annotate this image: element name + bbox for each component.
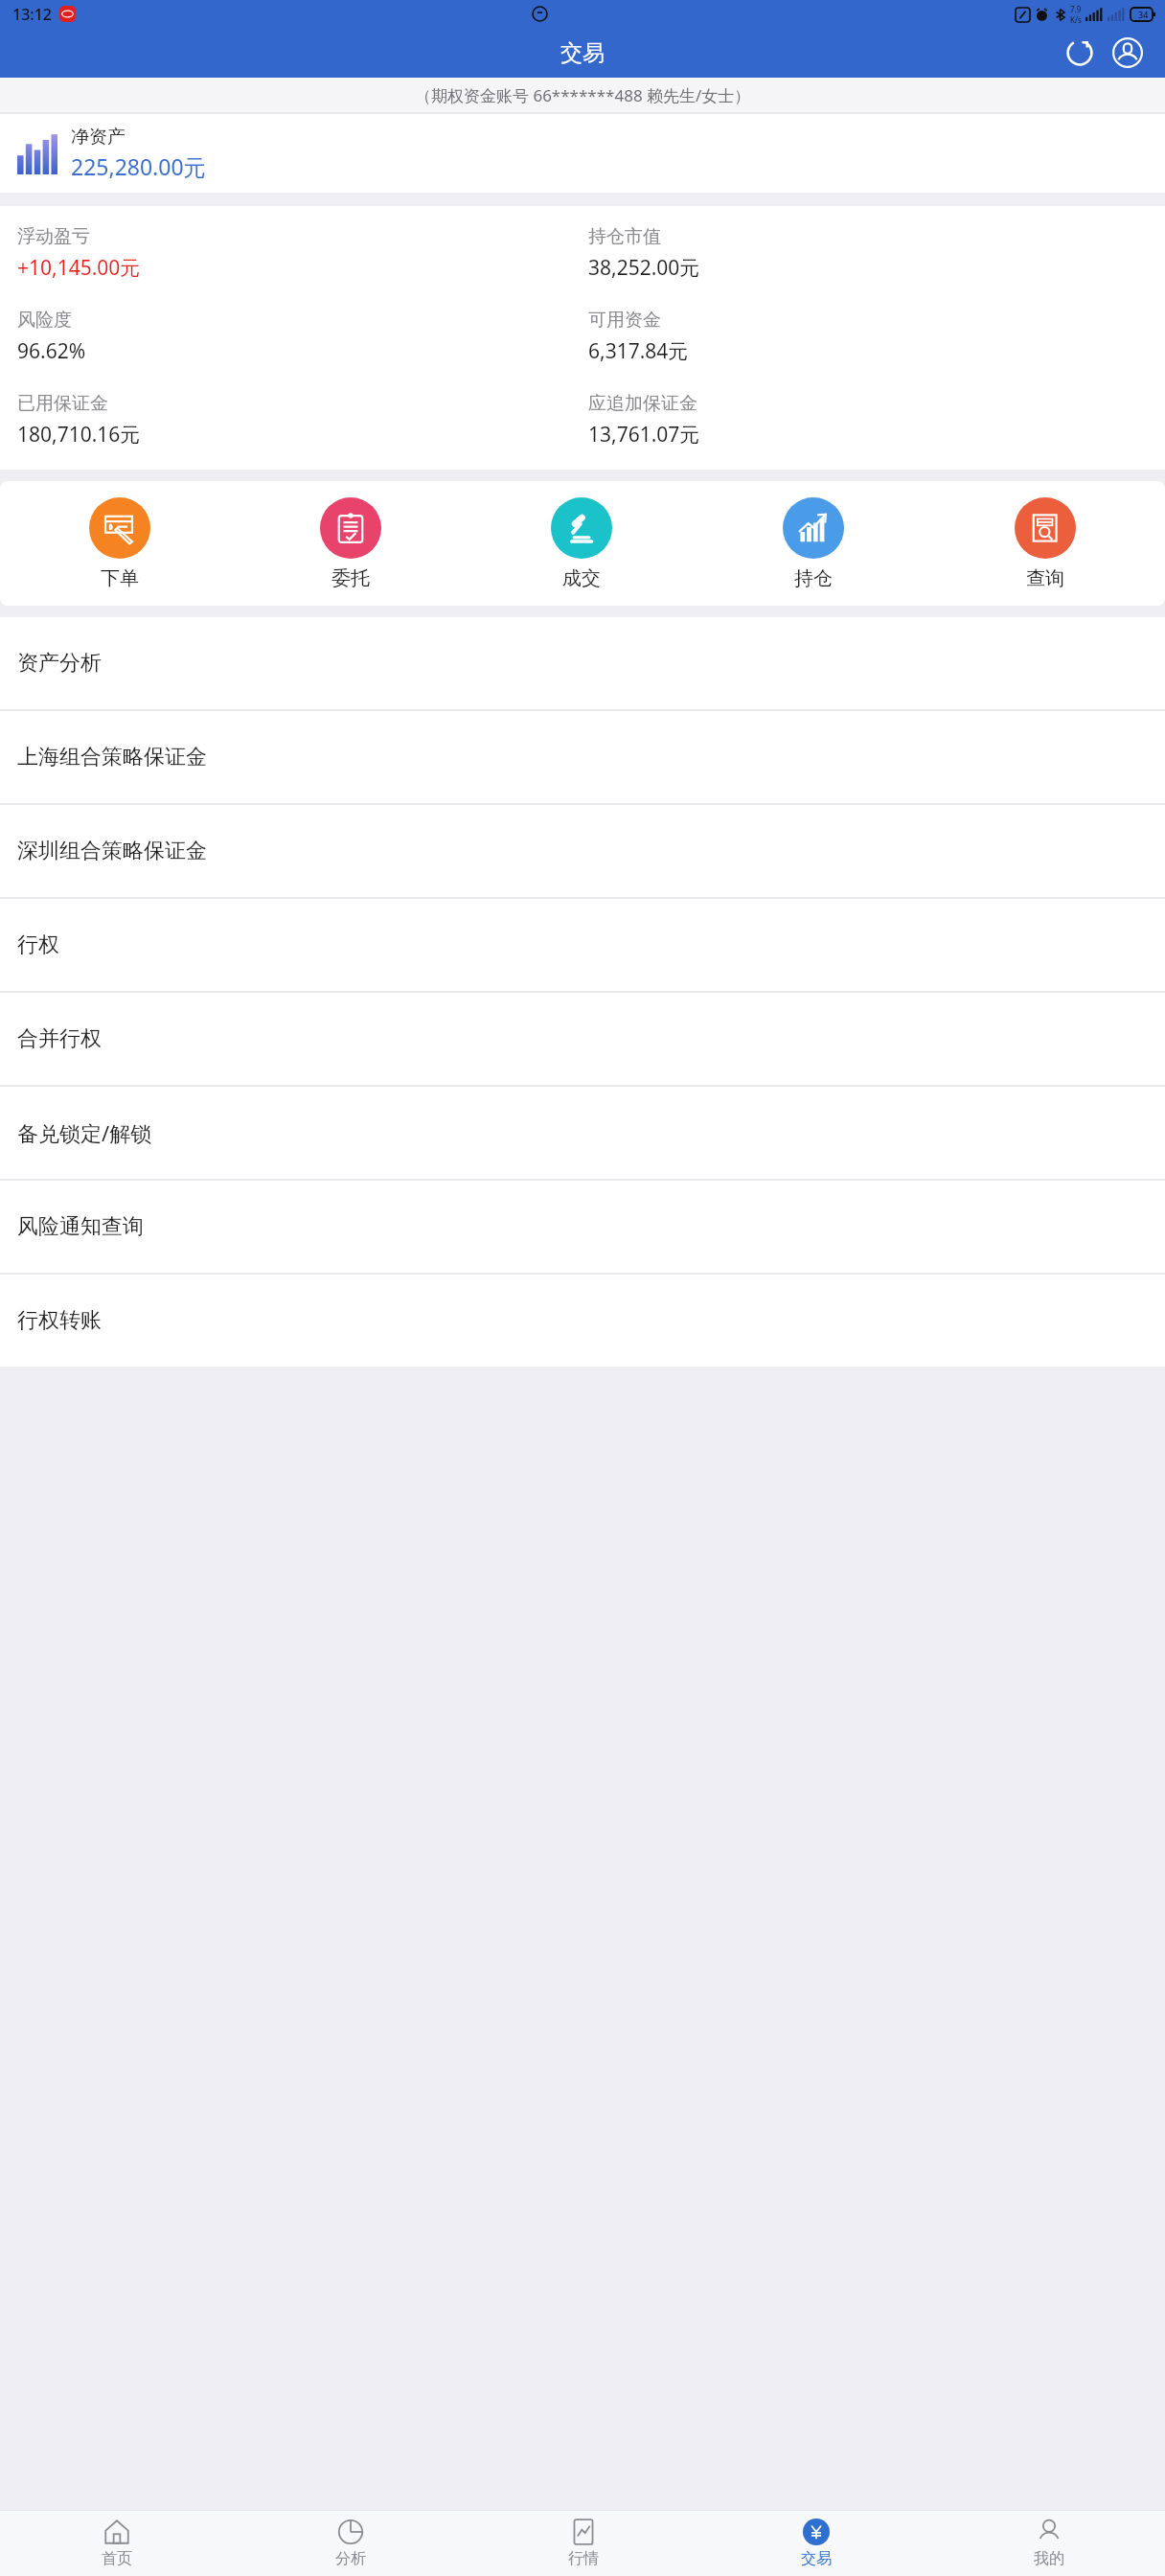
- staticText: 13,761.07元: [588, 421, 700, 448]
- staticText: 备兑锁定/解锁: [17, 1118, 152, 1147]
- staticText: 38,252.00元: [588, 254, 700, 282]
- staticText: 持仓市值: [588, 225, 661, 248]
- staticText: 成交: [562, 566, 601, 590]
- staticText: 96.62%: [17, 337, 86, 365]
- staticText: 查询: [1026, 566, 1064, 590]
- button[interactable]: 首页: [0, 2511, 234, 2576]
- staticText: 我的: [1034, 2549, 1064, 2568]
- staticText: 行权转账: [17, 1307, 102, 1334]
- staticText: 上海组合策略保证金: [17, 744, 207, 770]
- button[interactable]: 风险通知查询: [0, 1181, 1165, 1273]
- staticText: 225,280.00元: [71, 151, 206, 181]
- staticText: K/s: [1070, 14, 1082, 25]
- staticText: 行权: [17, 931, 59, 958]
- staticText: 应追加保证金: [588, 392, 697, 415]
- staticText: （期权资金账号 66*******488 赖先生/女士）: [415, 84, 751, 106]
- staticText: 交易: [801, 2549, 832, 2568]
- button[interactable]: 行情: [467, 2511, 699, 2576]
- staticText: 34: [1138, 9, 1149, 20]
- button[interactable]: 深圳组合策略保证金: [0, 805, 1165, 897]
- button[interactable]: 分析: [234, 2511, 467, 2576]
- button[interactable]: 上海组合策略保证金: [0, 711, 1165, 803]
- button[interactable]: 下单: [4, 481, 235, 606]
- button[interactable]: 成交: [466, 481, 697, 606]
- staticText: 可用资金: [588, 309, 661, 332]
- staticText: 浮动盈亏: [17, 225, 90, 248]
- staticText: 合并行权: [17, 1025, 102, 1052]
- staticText: 风险度: [17, 309, 72, 332]
- staticText: 资产分析: [17, 650, 102, 677]
- staticText: 180,710.16元: [17, 421, 141, 448]
- button[interactable]: 交易: [699, 2511, 932, 2576]
- button[interactable]: 资产分析: [0, 617, 1165, 709]
- staticText: 深圳组合策略保证金: [17, 838, 207, 864]
- staticText: 13:12: [12, 4, 52, 25]
- button[interactable]: 委托: [235, 481, 466, 606]
- staticText: 下单: [101, 566, 139, 590]
- staticText: 行情: [568, 2549, 599, 2568]
- button[interactable]: 我的: [932, 2511, 1165, 2576]
- staticText: 6,317.84元: [588, 337, 689, 365]
- button[interactable]: 合并行权: [0, 993, 1165, 1085]
- button[interactable]: 账户: [1106, 31, 1150, 75]
- button[interactable]: 查询: [929, 481, 1161, 606]
- button[interactable]: 刷新: [1058, 31, 1102, 75]
- staticText: 持仓: [794, 566, 833, 590]
- staticText: 首页: [102, 2549, 132, 2568]
- staticText: 7.9: [1070, 4, 1082, 14]
- button[interactable]: 持仓: [697, 481, 929, 606]
- staticText: 交易: [560, 39, 605, 67]
- button[interactable]: 行权转账: [0, 1275, 1165, 1367]
- button[interactable]: 行权: [0, 899, 1165, 991]
- staticText: 风险通知查询: [17, 1213, 144, 1240]
- staticText: 委托: [331, 566, 370, 590]
- staticText: 分析: [335, 2549, 366, 2568]
- staticText: 净资产: [71, 126, 126, 149]
- button[interactable]: 备兑锁定/解锁: [0, 1087, 1165, 1179]
- staticText: 已用保证金: [17, 392, 108, 415]
- staticText: +10,145.00元: [17, 254, 141, 282]
